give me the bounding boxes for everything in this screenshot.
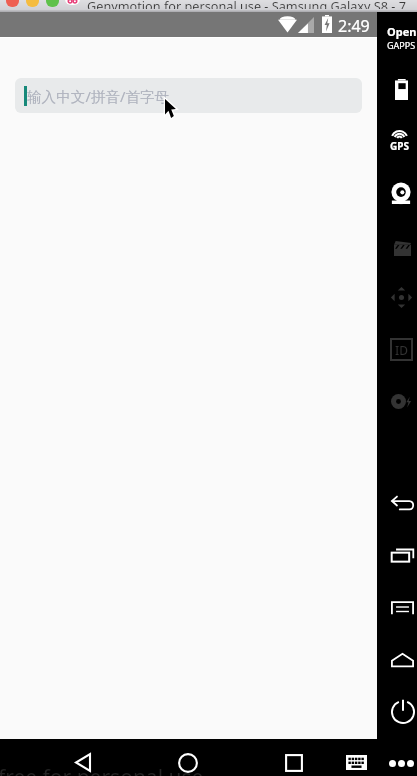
button[interactable]: More [378, 743, 417, 776]
staticText: 2:49 [338, 15, 370, 37]
button[interactable]: Record video [378, 228, 417, 268]
button[interactable]: Minimize [26, 0, 39, 7]
staticText: GPS [390, 139, 409, 153]
button[interactable]: Close [6, 0, 19, 7]
staticText: GAPPS [387, 39, 416, 51]
staticText: free for personal use [0, 763, 204, 776]
staticText: Genymotion for personal use - Samsung Ga… [87, 0, 417, 9]
button[interactable]: Home [378, 640, 417, 680]
button[interactable]: Home [175, 749, 201, 775]
button[interactable]: Navigate [378, 277, 417, 317]
staticText: 输入中文/拼音/首字母 [27, 86, 170, 106]
button[interactable]: Identifiers [378, 329, 417, 369]
button[interactable]: 输入中文/拼音/首字母 [15, 78, 362, 113]
button[interactable]: Open GAPPS [382, 24, 417, 54]
button[interactable]: GPS [378, 121, 417, 161]
button[interactable]: Recent apps [281, 749, 307, 775]
button[interactable]: Battery [378, 69, 417, 109]
button[interactable]: Power [378, 691, 417, 731]
button[interactable]: Maximize [46, 0, 59, 7]
button[interactable]: Disk IO [378, 381, 417, 421]
button[interactable]: Camera [378, 173, 417, 213]
staticText: Open [387, 24, 417, 39]
button[interactable]: Back [378, 483, 417, 523]
button[interactable]: Back [70, 749, 96, 775]
staticText: ID [395, 342, 409, 358]
button[interactable]: Recents [378, 535, 417, 575]
button[interactable]: Menu [378, 588, 417, 628]
button[interactable]: Keyboard [341, 749, 371, 775]
